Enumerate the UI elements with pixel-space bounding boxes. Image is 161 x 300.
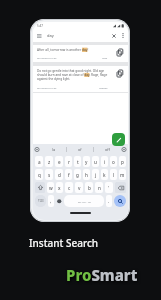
button[interactable]: la <box>41 144 66 154</box>
button[interactable] <box>112 133 125 146</box>
button[interactable]: FR · EN · US <box>64 195 104 207</box>
staticText: d <box>58 172 61 178</box>
button[interactable]: b <box>85 182 93 193</box>
staticText: day <box>47 33 54 38</box>
button[interactable] <box>35 182 45 193</box>
button[interactable]: a <box>35 156 43 167</box>
button[interactable]: q <box>35 169 43 180</box>
button[interactable]: e <box>55 156 63 167</box>
button[interactable]: w <box>47 182 54 193</box>
staticText: 5:47 <box>37 24 43 28</box>
staticText: e <box>58 159 61 165</box>
staticText: FR · EN · US <box>78 200 91 203</box>
staticText: ?123 <box>38 199 44 203</box>
button[interactable]: g <box>74 169 81 180</box>
button[interactable]: z <box>45 156 53 167</box>
staticText: a <box>38 159 41 165</box>
staticText: q <box>38 172 41 178</box>
button[interactable] <box>120 147 128 152</box>
staticText: u <box>94 159 97 165</box>
button[interactable]: d <box>55 169 63 180</box>
staticText: b <box>88 185 91 191</box>
button[interactable]: y <box>83 156 90 167</box>
staticText: s <box>48 172 51 178</box>
button[interactable]: k <box>101 169 108 180</box>
staticText: h <box>85 172 88 178</box>
button[interactable]: f <box>65 169 72 180</box>
staticText: , <box>50 198 52 204</box>
staticText: o <box>112 159 115 165</box>
staticText: t <box>77 159 79 165</box>
staticText: off <box>105 147 110 152</box>
staticText: Auto <box>102 56 108 59</box>
button[interactable]: of <box>67 144 93 154</box>
button[interactable]: c <box>65 182 73 193</box>
staticText: Instant Search <box>29 236 99 250</box>
staticText: f <box>68 172 70 178</box>
button[interactable]: ' <box>105 182 113 193</box>
button[interactable] <box>122 33 124 38</box>
staticText: ' <box>108 185 110 191</box>
button[interactable]: . <box>106 195 112 207</box>
staticText: y <box>85 159 88 165</box>
button[interactable]: off <box>94 144 120 154</box>
staticText: v <box>78 185 81 191</box>
button[interactable] <box>114 195 126 207</box>
staticText: p <box>121 159 124 165</box>
staticText: r <box>68 159 70 165</box>
staticText: Do not go gentle into that good night. O… <box>37 69 113 81</box>
staticText: n <box>98 185 101 191</box>
staticText: c <box>68 185 71 191</box>
button[interactable]: v <box>75 182 83 193</box>
staticText: x <box>58 185 61 191</box>
button[interactable]: s <box>45 169 53 180</box>
button[interactable] <box>115 182 126 193</box>
staticText: z <box>48 159 51 165</box>
staticText: Albums <box>99 86 108 89</box>
staticText: j <box>95 172 97 178</box>
button[interactable] <box>112 34 116 38</box>
staticText: g <box>76 172 79 178</box>
button[interactable] <box>117 49 124 57</box>
staticText: l <box>113 172 115 178</box>
button[interactable]: ?123 <box>35 195 46 207</box>
button[interactable]: j <box>92 169 99 180</box>
button[interactable]: , <box>48 195 54 207</box>
staticText: ProSmart <box>66 265 138 285</box>
button[interactable] <box>117 70 124 78</box>
button[interactable] <box>33 147 41 152</box>
button[interactable]: p <box>119 156 126 167</box>
staticText: of <box>78 147 82 152</box>
button[interactable]: x <box>56 182 63 193</box>
staticText: . <box>108 198 110 204</box>
button[interactable]: Do not go gentle into that good night. O… <box>33 66 128 92</box>
staticText: m <box>120 172 125 178</box>
button[interactable] <box>56 195 62 207</box>
staticText: la <box>52 147 56 152</box>
staticText: w <box>49 185 53 191</box>
button[interactable]: l <box>110 169 117 180</box>
button[interactable]: n <box>95 182 103 193</box>
button[interactable]: t <box>74 156 81 167</box>
button[interactable]: u <box>92 156 99 167</box>
button[interactable] <box>37 34 42 38</box>
staticText: k <box>103 172 106 178</box>
button[interactable]: o <box>110 156 117 167</box>
button[interactable]: m <box>119 169 126 180</box>
staticText: After all, tomorrow is another day! <box>37 48 89 52</box>
staticText: i <box>104 159 106 165</box>
button[interactable]: After all, tomorrow is another day! <box>33 45 128 62</box>
button[interactable]: r <box>65 156 72 167</box>
staticText: 05/10/2019 21:54 <box>37 56 57 59</box>
button[interactable]: h <box>83 169 90 180</box>
staticText: 05/10/2019 21:52 <box>37 86 57 89</box>
button[interactable]: i <box>101 156 108 167</box>
